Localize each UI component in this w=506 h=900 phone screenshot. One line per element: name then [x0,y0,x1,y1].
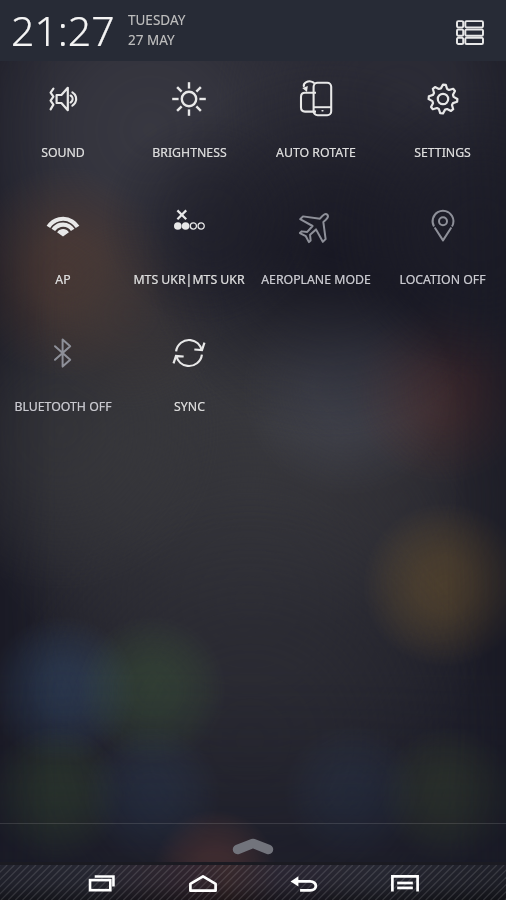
staticText: 27 MAY [128,31,175,49]
button[interactable]: AP [0,188,126,315]
staticText: SETTINGS [414,144,471,161]
button[interactable]: Collapse quick settings [233,845,273,854]
staticText: AP [55,271,71,288]
staticText: 21:27 [11,2,115,58]
staticText: AEROPLANE MODE [261,271,371,288]
button[interactable]: Recents [51,866,152,900]
button[interactable]: SOUND [0,61,126,188]
staticText: MTS UKR|MTS UKR [133,271,245,288]
staticText: SYNC [174,398,205,415]
staticText: LOCATION OFF [399,271,486,288]
staticText: BRIGHTNESS [152,144,227,161]
button[interactable]: SYNC [126,315,252,442]
button[interactable]: Home [152,866,253,900]
button[interactable]: MTS UKR|MTS UKR [126,188,252,315]
staticText: BLUETOOTH OFF [14,398,112,415]
button[interactable]: LOCATION OFF [379,188,506,315]
button[interactable]: SETTINGS [379,61,506,188]
button[interactable]: Settings list [448,9,492,53]
button[interactable]: Menu [354,866,455,900]
button[interactable]: AUTO ROTATE [252,61,379,188]
button[interactable]: Back [253,866,354,900]
button[interactable]: AEROPLANE MODE [252,188,379,315]
staticText: TUESDAY [128,11,186,29]
button[interactable]: BLUETOOTH OFF [0,315,126,442]
staticText: AUTO ROTATE [276,144,356,161]
staticText: SOUND [41,144,85,161]
button[interactable]: BRIGHTNESS [126,61,252,188]
